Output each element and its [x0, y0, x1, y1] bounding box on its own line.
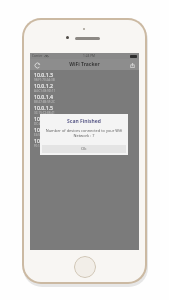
button[interactable]: Refresh [33, 61, 41, 69]
staticText: 10.0.1.8 [34, 126, 54, 133]
staticText: A4:C1:38:9D:11 [34, 89, 56, 92]
staticText: Ok [81, 146, 87, 152]
staticText: DC:A6:32:17:90 [34, 122, 56, 125]
button[interactable]: 10.0.1.2 [30, 81, 139, 92]
staticText: WiFi Tracker [69, 61, 100, 68]
staticText: 10.0.1.9 [34, 137, 54, 144]
staticText: Carrier [32, 54, 43, 58]
staticText: 10.0.1.5 [34, 104, 54, 111]
button[interactable]: 10.0.1.8 [30, 125, 139, 136]
staticText: Scan Finished [67, 118, 101, 125]
staticText: B8:27:EB:5F:2C [34, 100, 55, 103]
staticText: F0:18:98:42:AA [34, 144, 55, 147]
button[interactable]: 10.0.1.9 [30, 136, 139, 147]
staticText: E4:5F:01:C3:6D [34, 133, 55, 136]
button[interactable]: 10.0.1.5 [30, 103, 139, 114]
staticText: 10.0.1.7 [34, 115, 54, 122]
staticText: 98:F1:70:2A:3B [34, 78, 55, 81]
staticText: 10.0.1.3 [34, 71, 54, 78]
button[interactable]: 10.0.1.3 [30, 70, 139, 81]
staticText: 10.0.1.2 [34, 82, 54, 89]
staticText: 1:24 PM [83, 54, 95, 58]
button[interactable]: 10.0.1.4 [30, 92, 139, 103]
staticText: 10.0.1.4 [34, 93, 54, 100]
button[interactable]: Ok [42, 145, 126, 153]
button[interactable]: 10.0.1.7 [30, 114, 139, 125]
staticText: Number of devices connected to your Wifi… [45, 128, 123, 138]
staticText: 3C:15:C2:88:41 [34, 111, 55, 114]
button[interactable]: Share [128, 61, 136, 69]
